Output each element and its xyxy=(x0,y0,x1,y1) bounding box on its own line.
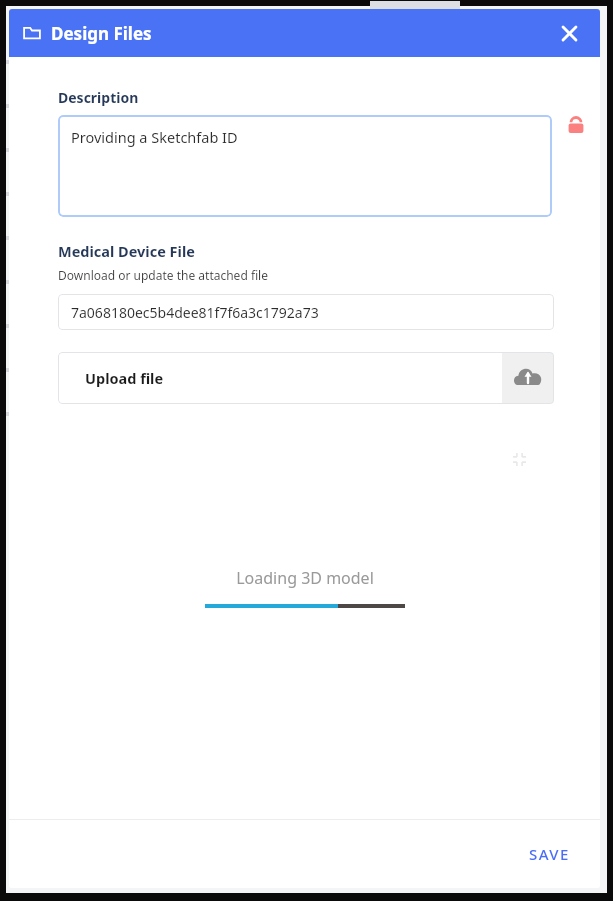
button[interactable]: 7a068180ec5b4dee81f7f6a3c1792a73 xyxy=(58,294,554,330)
staticText: Loading 3D model xyxy=(236,567,374,589)
staticText: Design Files xyxy=(51,22,152,45)
staticText: Description xyxy=(58,88,139,107)
staticText: Providing a Sketchfab ID xyxy=(71,127,238,147)
button[interactable]: Locked xyxy=(561,115,591,155)
staticText: Upload file xyxy=(85,368,164,388)
staticText: 7a068180ec5b4dee81f7f6a3c1792a73 xyxy=(71,303,319,322)
button[interactable]: Close xyxy=(552,16,586,50)
staticText: Medical Device File xyxy=(58,241,195,261)
button[interactable]: Upload file xyxy=(58,352,554,404)
staticText: SAVE xyxy=(529,844,570,864)
button[interactable]: Exit fullscreen xyxy=(508,448,530,470)
button[interactable]: SAVE xyxy=(515,836,584,872)
button[interactable]: Providing a Sketchfab ID xyxy=(58,115,552,217)
button[interactable]: Upload xyxy=(502,352,554,404)
staticText: Download or update the attached file xyxy=(58,267,268,283)
